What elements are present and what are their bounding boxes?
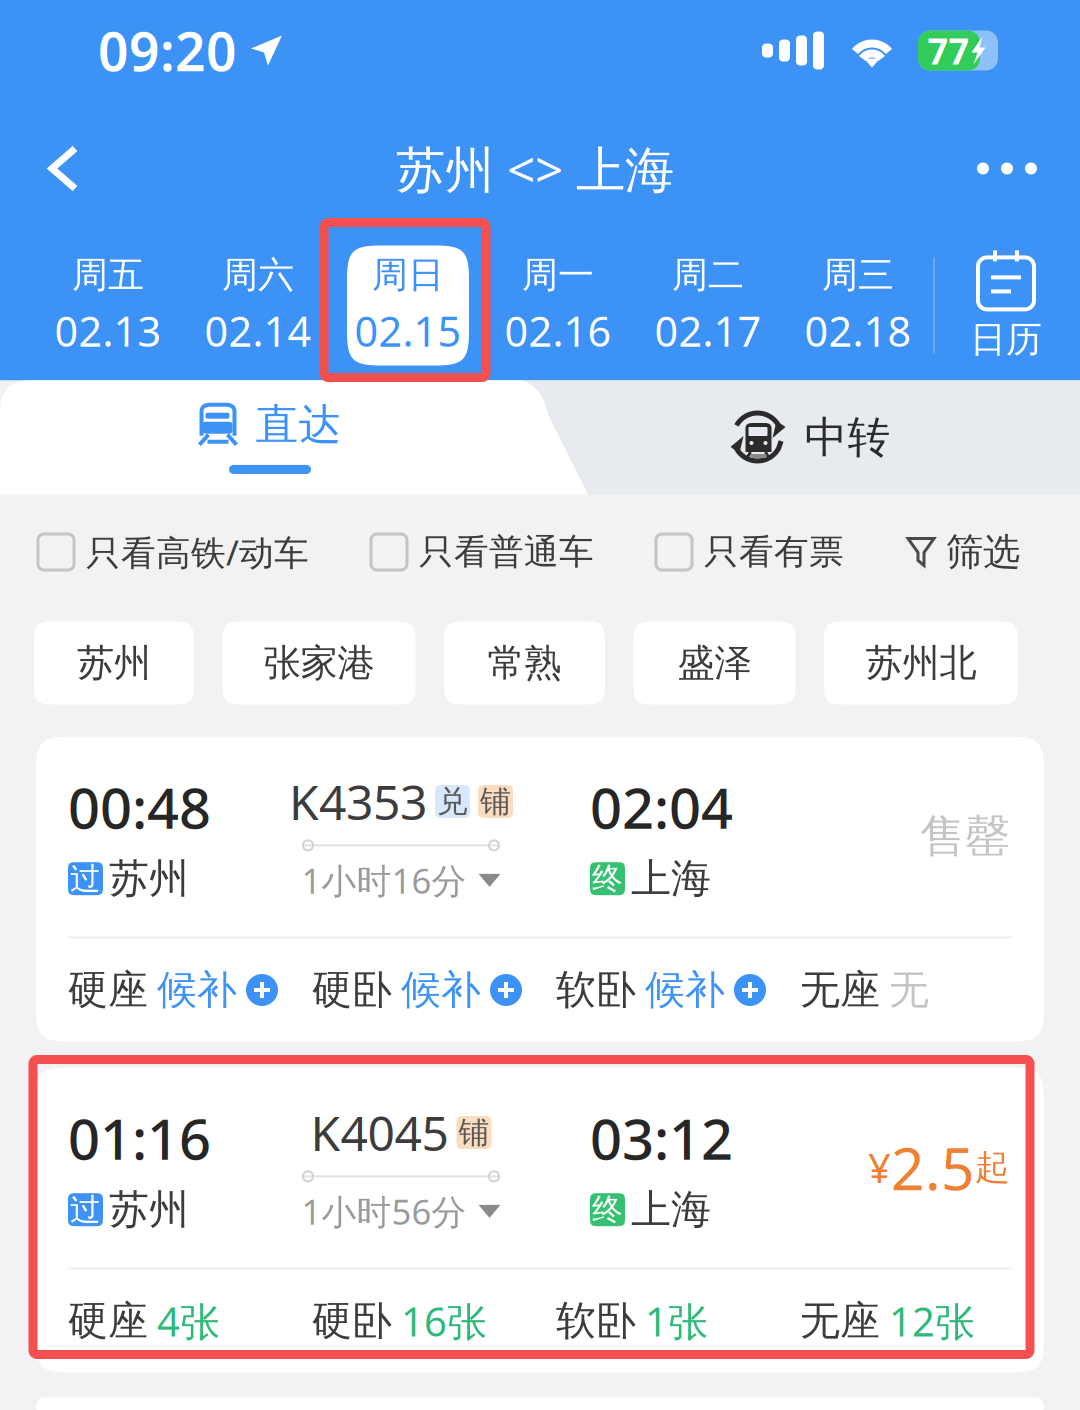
staticText: 中转: [804, 411, 890, 464]
button[interactable]: 常熟: [444, 621, 605, 704]
staticText: 1张: [645, 1294, 708, 1347]
staticText: 起: [975, 1146, 1010, 1189]
staticText: 苏州: [77, 640, 151, 686]
staticText: 02.18: [804, 303, 911, 358]
button[interactable]: 00:48: [36, 736, 1044, 1041]
staticText: 苏州北: [865, 640, 976, 686]
staticText: 02.13: [54, 303, 161, 358]
button[interactable]: 苏州北: [824, 621, 1018, 704]
staticText: 日历: [970, 317, 1042, 362]
staticText: 硬座: [68, 965, 148, 1014]
staticText: 1小时56分: [301, 1188, 466, 1234]
staticText: 02.16: [504, 303, 611, 358]
button[interactable]: 周六: [183, 230, 333, 380]
button[interactable]: 周五: [33, 230, 183, 380]
staticText: 周五: [72, 253, 144, 297]
staticText: 终: [592, 1191, 623, 1228]
staticText: 1小时16分: [301, 857, 466, 903]
staticText: 硬卧: [312, 965, 392, 1014]
staticText: 上海: [631, 1185, 711, 1234]
button[interactable]: 日历: [935, 230, 1077, 380]
staticText: 只看高铁/动车: [86, 529, 309, 575]
staticText: 硬座: [68, 1296, 148, 1345]
button[interactable]: Back: [8, 122, 118, 214]
button[interactable]: 周一: [483, 230, 633, 380]
staticText: ¥: [868, 1141, 891, 1194]
staticText: 上海: [631, 854, 711, 903]
staticText: 候补: [157, 965, 237, 1014]
button[interactable]: 周二: [633, 230, 783, 380]
staticText: 周二: [672, 253, 744, 297]
staticText: 01:16: [68, 1101, 211, 1175]
staticText: 软卧: [556, 1296, 636, 1345]
staticText: 苏州 <> 上海: [396, 136, 674, 201]
staticText: 盛泽: [677, 640, 751, 686]
staticText: 09:20: [98, 15, 237, 86]
staticText: 02.17: [654, 303, 761, 358]
staticText: 直达: [255, 398, 341, 451]
staticText: 周六: [222, 253, 294, 297]
staticText: 只看普通车: [419, 531, 594, 573]
button[interactable]: 周三: [783, 230, 933, 380]
staticText: 4张: [157, 1294, 220, 1347]
button[interactable]: 盛泽: [633, 621, 795, 704]
staticText: 周一: [522, 253, 594, 297]
button[interactable]: 筛选: [906, 529, 1020, 575]
staticText: 02.15: [354, 303, 461, 358]
staticText: 筛选: [946, 529, 1020, 575]
staticText: 软卧: [556, 965, 636, 1014]
staticText: 铺: [480, 783, 511, 820]
staticText: 12张: [889, 1294, 975, 1347]
staticText: K4045: [310, 1101, 448, 1164]
staticText: 02:04: [590, 770, 733, 844]
staticText: 无座: [800, 1296, 880, 1345]
staticText: 2.5: [891, 1128, 975, 1206]
staticText: 03:12: [590, 1101, 733, 1175]
staticText: 只看有票: [704, 531, 844, 573]
staticText: 周三: [822, 253, 894, 297]
staticText: 常熟: [487, 640, 561, 686]
staticText: 无: [889, 965, 929, 1014]
staticText: 16张: [401, 1294, 487, 1347]
button[interactable]: 01:16: [18, 1059, 1062, 1389]
staticText: 终: [592, 860, 623, 897]
button[interactable]: More options: [952, 122, 1062, 214]
staticText: 77: [927, 27, 969, 74]
staticText: 无座: [800, 965, 880, 1014]
staticText: 候补: [645, 965, 725, 1014]
staticText: 张家港: [263, 640, 374, 686]
staticText: 候补: [401, 965, 481, 1014]
staticText: 过: [70, 860, 101, 897]
button[interactable]: 只看普通车: [371, 531, 594, 573]
staticText: 周日: [372, 253, 444, 297]
button[interactable]: 中转: [540, 381, 1080, 493]
button[interactable]: 直达: [0, 380, 540, 494]
button[interactable]: 周日: [333, 230, 483, 380]
staticText: 00:48: [68, 770, 211, 844]
button[interactable]: 张家港: [222, 621, 415, 704]
staticText: 硬卧: [312, 1296, 392, 1345]
staticText: 02.14: [204, 303, 311, 358]
button[interactable]: 只看有票: [656, 531, 844, 573]
staticText: 过: [70, 1191, 101, 1228]
staticText: 苏州: [109, 854, 189, 903]
staticText: 铺: [458, 1114, 489, 1151]
button[interactable]: 苏州: [34, 621, 194, 704]
staticText: 兑: [437, 783, 468, 820]
button[interactable]: 只看高铁/动车: [38, 529, 309, 575]
staticText: K4353: [289, 770, 427, 833]
staticText: 售罄: [920, 809, 1010, 864]
staticText: 苏州: [109, 1185, 189, 1234]
